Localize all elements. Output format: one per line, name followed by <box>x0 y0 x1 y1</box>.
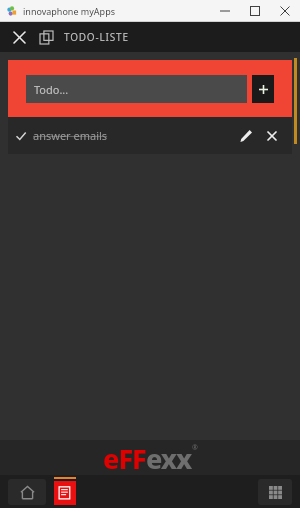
staticText: ® <box>192 443 198 453</box>
button[interactable]: Todo list <box>52 477 78 507</box>
button[interactable]: Windows <box>36 27 56 47</box>
staticText: Todo... <box>34 82 69 97</box>
staticText: innovaphone myApps <box>23 5 115 17</box>
button[interactable]: Todo... <box>26 75 247 103</box>
staticText: exx <box>146 440 192 475</box>
button[interactable]: Maximize <box>240 0 270 22</box>
button[interactable]: answer emails <box>8 117 292 154</box>
button[interactable]: Add todo <box>252 75 274 103</box>
button[interactable]: Close app <box>8 26 30 48</box>
button[interactable]: Delete <box>262 126 282 146</box>
staticText: answer emails <box>33 128 108 143</box>
button[interactable]: Home <box>8 479 46 505</box>
staticText: eFF <box>103 440 146 475</box>
staticText: TODO-LISTE <box>64 30 129 44</box>
button[interactable]: Close <box>270 0 300 22</box>
button[interactable]: Apps <box>258 479 292 505</box>
button[interactable]: Minimize <box>210 0 240 22</box>
button[interactable]: Edit <box>236 126 256 146</box>
